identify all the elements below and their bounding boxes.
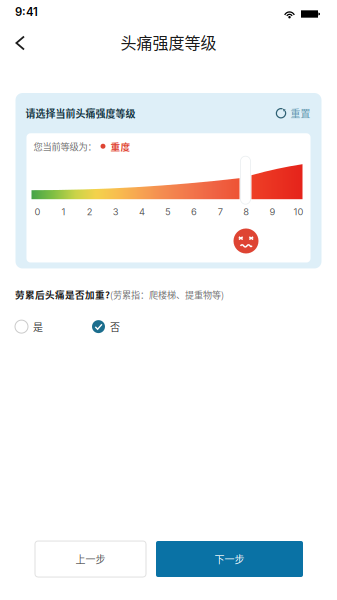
staticText: 2 xyxy=(87,206,93,217)
staticText: 您当前等级为： xyxy=(33,139,96,153)
staticText: 7 xyxy=(218,206,223,217)
staticText: 下一步 xyxy=(214,552,244,566)
button[interactable]: Back xyxy=(0,25,41,61)
staticText: (劳累指：爬楼梯、提重物等) xyxy=(110,288,224,301)
staticText: 头痛强度等级 xyxy=(120,30,216,54)
staticText: 0 xyxy=(34,206,40,217)
staticText: 3 xyxy=(113,206,119,217)
button[interactable]: 否 xyxy=(92,315,120,338)
button[interactable]: 重置 xyxy=(275,104,310,122)
staticText: 1 xyxy=(62,206,66,217)
staticText: 是 xyxy=(33,319,43,334)
staticText: 4 xyxy=(139,206,145,217)
staticText: 请选择当前头痛强度等级 xyxy=(25,106,135,120)
staticText: 9:41 xyxy=(15,5,38,19)
button[interactable]: 上一步 xyxy=(35,541,146,577)
staticText: 9 xyxy=(269,206,275,217)
button[interactable]: 下一步 xyxy=(156,541,303,577)
button[interactable]: 是 xyxy=(15,315,43,338)
staticText: 上一步 xyxy=(75,552,105,566)
staticText: 重度 xyxy=(110,139,130,153)
staticText: 6 xyxy=(191,206,197,217)
staticText: 劳累后头痛是否加重? xyxy=(15,287,110,301)
staticText: 8 xyxy=(243,206,249,217)
staticText: 重置 xyxy=(290,106,310,120)
staticText: 5 xyxy=(165,206,171,217)
staticText: 10 xyxy=(293,206,303,217)
staticText: 否 xyxy=(110,319,120,334)
